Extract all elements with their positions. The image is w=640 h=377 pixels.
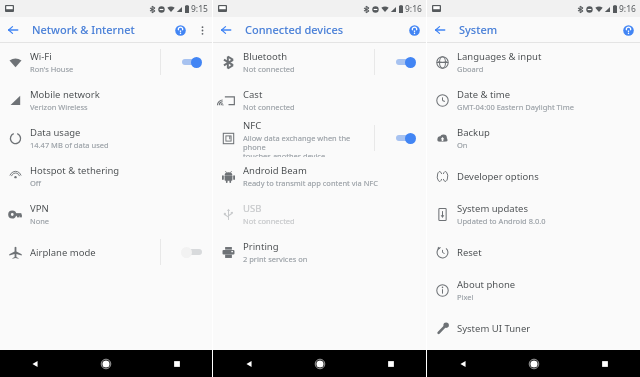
staticText: Updated to Android 8.0.0 — [457, 216, 546, 226]
staticText: None — [30, 216, 50, 226]
button[interactable]: Help — [616, 18, 640, 42]
staticText: USB — [243, 202, 262, 215]
staticText: 2 print services on — [243, 254, 308, 264]
button[interactable]: Back — [0, 350, 70, 377]
staticText: Verizon Wireless — [30, 102, 88, 112]
staticText: 9:16 — [619, 3, 636, 15]
staticText: System updates — [457, 202, 528, 215]
staticText: 9:16 — [405, 3, 422, 15]
button[interactable]: Help — [402, 18, 426, 42]
staticText: Wi-Fi — [30, 50, 52, 63]
button[interactable]: About phone — [427, 271, 640, 309]
staticText: Date & time — [457, 88, 511, 101]
button[interactable]: Back — [213, 350, 284, 377]
staticText: Printing — [243, 240, 279, 253]
staticText: Ron's House — [30, 64, 74, 74]
button[interactable]: Backup — [427, 119, 640, 157]
staticText: Languages & input — [457, 50, 542, 63]
button[interactable]: System updates — [427, 195, 640, 233]
staticText: Hotspot & tethering — [30, 164, 120, 177]
staticText: Gboard — [457, 64, 484, 74]
button[interactable]: Data usage — [0, 119, 212, 157]
button[interactable]: Hotspot & tethering — [0, 157, 212, 195]
staticText: Android Beam — [243, 164, 307, 177]
button[interactable]: Printing — [213, 233, 426, 271]
staticText: Not connected — [243, 64, 295, 74]
button[interactable] — [172, 233, 212, 271]
button[interactable]: Cast — [213, 81, 426, 119]
staticText: Network & Internet — [32, 22, 135, 37]
staticText: Not connected — [243, 102, 295, 112]
button[interactable]: Reset — [427, 233, 640, 271]
staticText: Airplane mode — [30, 246, 96, 259]
staticText: GMT-04:00 Eastern Daylight Time — [457, 102, 574, 112]
button[interactable]: Back — [427, 350, 498, 377]
button[interactable]: USB — [213, 195, 426, 233]
button[interactable]: Wi-Fi — [0, 43, 212, 81]
button[interactable]: Home — [284, 350, 355, 377]
staticText: Data usage — [30, 126, 81, 139]
staticText: Cast — [243, 88, 263, 101]
button[interactable]: Back — [427, 17, 452, 42]
staticText: VPN — [30, 202, 49, 215]
button[interactable]: VPN — [0, 195, 212, 233]
staticText: Off — [30, 178, 42, 188]
staticText: Reset — [457, 246, 482, 259]
staticText: On — [457, 140, 468, 150]
button[interactable]: Bluetooth — [213, 43, 426, 81]
button[interactable]: Date & time — [427, 81, 640, 119]
button[interactable]: Home — [70, 350, 141, 377]
button[interactable] — [386, 43, 426, 81]
staticText: 9:15 — [191, 3, 208, 15]
button[interactable]: Airplane mode — [0, 233, 212, 271]
button[interactable]: Recents — [355, 350, 426, 377]
button[interactable]: Recents — [569, 350, 640, 377]
staticText: System — [459, 22, 498, 37]
button[interactable]: More options — [192, 20, 212, 40]
staticText: Ready to transmit app content via NFC — [243, 178, 378, 188]
button[interactable]: Developer options — [427, 157, 640, 195]
button[interactable]: Recents — [141, 350, 212, 377]
button[interactable] — [386, 119, 426, 157]
button[interactable]: Mobile network — [0, 81, 212, 119]
staticText: Developer options — [457, 170, 539, 183]
staticText: Mobile network — [30, 88, 100, 101]
button[interactable]: System UI Tuner — [427, 309, 640, 347]
staticText: About phone — [457, 278, 516, 291]
staticText: Connected devices — [245, 22, 344, 37]
staticText: Allow data exchange when the phone touch… — [243, 133, 374, 157]
staticText: Pixel — [457, 292, 474, 302]
staticText: Bluetooth — [243, 50, 288, 63]
staticText: Backup — [457, 126, 490, 139]
button[interactable]: Back — [213, 17, 238, 42]
staticText: System UI Tuner — [457, 322, 531, 335]
button[interactable] — [172, 43, 212, 81]
staticText: 14.47 MB of data used — [30, 140, 109, 150]
staticText: NFC — [243, 119, 262, 132]
button[interactable]: Home — [498, 350, 569, 377]
button[interactable]: Back — [0, 17, 25, 42]
button[interactable]: NFC — [213, 119, 426, 157]
staticText: Not connected — [243, 216, 295, 226]
button[interactable]: Android Beam — [213, 157, 426, 195]
button[interactable]: Help — [168, 18, 192, 42]
button[interactable]: Languages & input — [427, 43, 640, 81]
